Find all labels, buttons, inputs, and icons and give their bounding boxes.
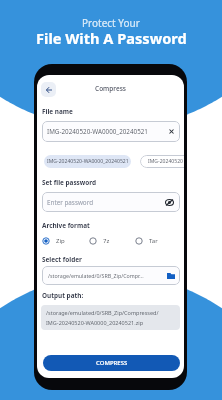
- staticText: Archive format: [42, 221, 90, 230]
- staticText: Select folder: [42, 255, 82, 264]
- staticText: IMG-20240520-WA0000_20240521: [47, 158, 129, 165]
- staticText: /storage/emulated/0/SRB_Zip/Compr...: [48, 272, 144, 279]
- staticText: COMPRESS: [96, 359, 128, 367]
- other: Clear: [169, 129, 174, 134]
- button[interactable]: Zip: [42, 237, 65, 245]
- button[interactable]: Enter password: [42, 192, 180, 212]
- button[interactable]: IMG-20240520: [140, 155, 184, 168]
- staticText: Enter password: [47, 198, 93, 207]
- button[interactable]: Tar: [135, 237, 158, 245]
- other: Show password: [165, 199, 174, 206]
- staticText: IMG-20240520-WA0000_20240521: [47, 127, 148, 136]
- staticText: Compress: [95, 84, 126, 93]
- staticText: File name: [42, 107, 73, 116]
- staticText: 7z: [103, 237, 110, 245]
- other: Browse folder: [167, 273, 175, 279]
- button[interactable]: /storage/emulated/0/SRB_Zip/Compr...: [42, 266, 180, 285]
- staticText: Output path:: [42, 291, 84, 300]
- staticText: IMG-20240520: [148, 158, 184, 165]
- staticText: File With A Password: [36, 28, 187, 48]
- button[interactable]: 7z: [89, 237, 110, 245]
- staticText: Protect Your: [82, 16, 140, 30]
- button[interactable]: Back: [41, 82, 56, 97]
- staticText: Tar: [149, 237, 158, 245]
- button[interactable]: IMG-20240520-WA0000_20240521: [44, 155, 131, 168]
- staticText: /storage/emulated/0/SRB_Zip/Compressed/ …: [46, 309, 159, 326]
- staticText: Set file password: [42, 178, 97, 187]
- button[interactable]: IMG-20240520-WA0000_20240521: [42, 121, 180, 142]
- button[interactable]: COMPRESS: [43, 355, 180, 371]
- staticText: Zip: [56, 237, 65, 245]
